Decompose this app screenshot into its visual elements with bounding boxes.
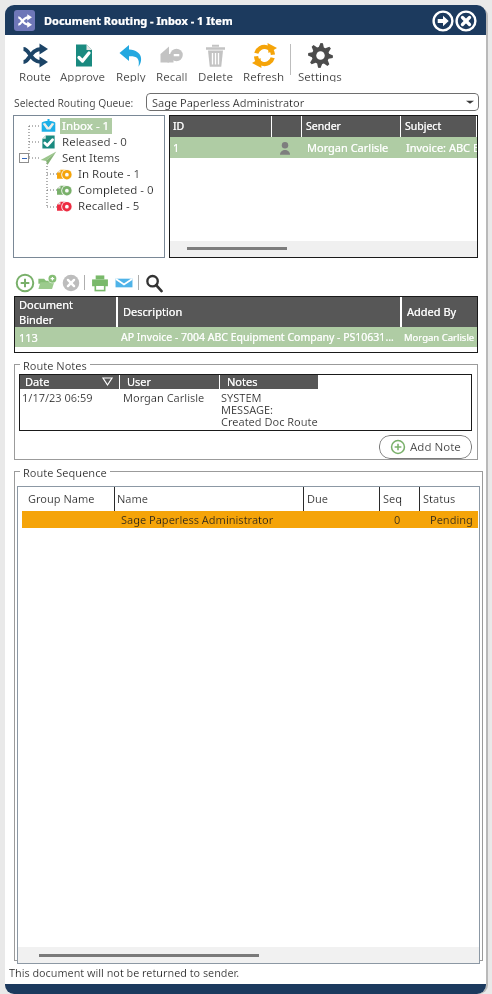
button[interactable]: Detach window xyxy=(431,9,454,32)
staticText: Invoice: ABC E xyxy=(406,140,480,155)
button[interactable]: Email xyxy=(114,273,133,292)
staticText: Status xyxy=(423,491,456,506)
staticText: Route xyxy=(19,69,51,82)
staticText: Settings xyxy=(298,69,342,82)
button[interactable]: Open folder xyxy=(37,273,56,292)
button[interactable]: Route xyxy=(11,39,59,82)
button[interactable]: Completed - 0 xyxy=(56,182,156,198)
staticText: Route Sequence xyxy=(23,465,107,480)
button[interactable]: 1 xyxy=(169,137,478,158)
staticText: Delete xyxy=(198,69,233,82)
staticText: ID xyxy=(173,119,185,133)
button[interactable]: Add document xyxy=(15,273,34,292)
staticText: Sender xyxy=(306,119,341,133)
staticText: Pending xyxy=(430,512,473,527)
staticText: Reply xyxy=(116,69,146,82)
staticText: In Route - 1 xyxy=(78,166,141,182)
button[interactable]: Close xyxy=(454,9,477,32)
staticText: Description xyxy=(123,304,183,319)
staticText: 0 xyxy=(394,512,401,527)
button[interactable]: Sent Items xyxy=(40,150,122,166)
staticText: MESSAGE: xyxy=(221,402,274,417)
staticText: Route Notes xyxy=(23,358,87,373)
staticText: Notes xyxy=(227,374,258,389)
button[interactable]: Released - 0 xyxy=(40,134,129,150)
staticText: Due xyxy=(307,491,329,506)
button[interactable]: Inbox - 1 xyxy=(40,118,112,134)
staticText: Document Routing - Inbox - 1 Item xyxy=(44,13,233,28)
staticText: Sage Paperless Administrator xyxy=(121,512,274,527)
staticText: Subject xyxy=(405,119,442,133)
button[interactable]: Refresh xyxy=(240,39,288,82)
staticText: 113 xyxy=(19,330,38,345)
staticText: Name xyxy=(117,491,149,506)
button[interactable]: Collapse Sent Items xyxy=(19,153,29,163)
button[interactable]: Search xyxy=(144,273,163,292)
staticText: Added By xyxy=(407,304,457,319)
staticText: Document xyxy=(19,297,74,312)
staticText: Refresh xyxy=(243,69,285,82)
button[interactable]: Approve xyxy=(59,39,107,82)
staticText: Morgan Carlisle xyxy=(123,390,205,405)
staticText: SYSTEM xyxy=(221,390,262,405)
staticText: Binder xyxy=(19,312,54,327)
button[interactable]: 113 xyxy=(14,327,478,347)
staticText: 1 xyxy=(173,140,180,155)
button[interactable]: Sage Paperless Administrator xyxy=(22,511,478,528)
staticText: Group Name xyxy=(28,491,95,506)
button[interactable]: Reply xyxy=(107,39,155,82)
staticText: Sage Paperless Administrator xyxy=(152,95,305,110)
staticText: Recalled - 5 xyxy=(78,198,140,214)
staticText: 1/17/23 06:59 xyxy=(22,390,93,405)
button[interactable]: Recalled - 5 xyxy=(56,198,142,214)
button[interactable]: Settings xyxy=(296,39,344,82)
button[interactable]: Print xyxy=(90,273,109,292)
staticText: Created Doc Route xyxy=(221,414,318,429)
button[interactable]: In Route - 1 xyxy=(56,166,143,182)
staticText: AP Invoice - 7004 ABC Equipment Company … xyxy=(121,330,394,344)
button[interactable]: Add Note xyxy=(379,435,472,459)
staticText: User xyxy=(127,374,152,389)
staticText: Date xyxy=(25,374,50,389)
staticText: Selected Routing Queue: xyxy=(14,96,134,110)
button[interactable]: Delete xyxy=(191,39,239,82)
staticText: Sent Items xyxy=(62,150,120,166)
staticText: Approve xyxy=(60,69,106,82)
staticText: Morgan Carlisle xyxy=(404,331,475,344)
staticText: Seq xyxy=(383,491,403,506)
staticText: Add Note xyxy=(410,439,461,455)
button[interactable]: Recall xyxy=(148,39,196,82)
staticText: This document will not be returned to se… xyxy=(9,965,240,980)
staticText: Inbox - 1 xyxy=(62,118,110,134)
staticText: Recall xyxy=(156,69,188,82)
staticText: Completed - 0 xyxy=(78,182,154,198)
staticText: Released - 0 xyxy=(62,134,127,150)
button[interactable]: Sage Paperless Administrator xyxy=(146,93,479,111)
staticText: Morgan Carlisle xyxy=(307,140,389,155)
button[interactable]: Remove xyxy=(61,273,80,292)
